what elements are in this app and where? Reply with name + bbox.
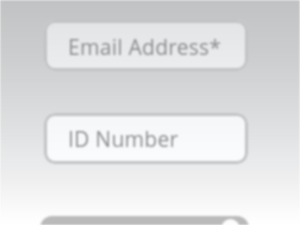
- staticText: ID Number: [68, 125, 179, 154]
- button[interactable]: ID Number: [44, 113, 248, 164]
- button[interactable]: Email Address*: [44, 20, 248, 71]
- button[interactable]: [40, 216, 249, 225]
- staticText: Email Address*: [68, 33, 222, 62]
